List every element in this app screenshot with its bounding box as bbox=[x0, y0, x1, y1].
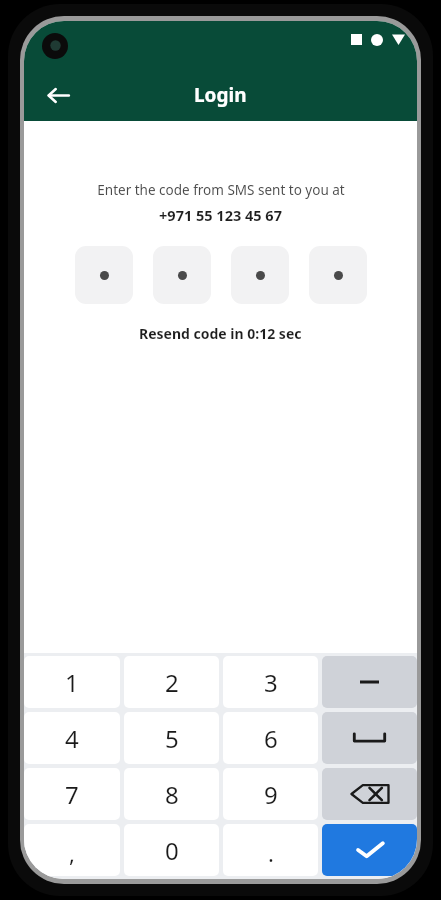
button[interactable]: 8 bbox=[124, 768, 219, 820]
staticText: 9 bbox=[264, 778, 278, 811]
button[interactable] bbox=[75, 246, 133, 304]
button[interactable]: 9 bbox=[223, 768, 318, 820]
staticText: 5 bbox=[165, 722, 179, 755]
button[interactable]: 1 bbox=[24, 656, 120, 708]
staticText: 6 bbox=[264, 722, 278, 755]
staticText: 3 bbox=[264, 666, 278, 699]
staticText: 0 bbox=[165, 834, 179, 867]
button[interactable]: Backspace bbox=[322, 768, 417, 820]
button[interactable]: Back bbox=[36, 73, 80, 117]
staticText: Resend code in 0:12 sec bbox=[139, 324, 302, 343]
staticText: Login bbox=[194, 82, 247, 108]
button[interactable]: 5 bbox=[124, 712, 219, 764]
staticText: 2 bbox=[165, 666, 179, 699]
staticText: +971 55 123 45 67 bbox=[159, 205, 282, 225]
button[interactable]: 3 bbox=[223, 656, 318, 708]
button[interactable]: Space bbox=[322, 712, 417, 764]
button[interactable]: 6 bbox=[223, 712, 318, 764]
staticText: 4 bbox=[65, 722, 79, 755]
button[interactable]: Resend code in 0:12 sec bbox=[139, 324, 302, 343]
staticText: Enter the code from SMS sent to you at bbox=[97, 181, 345, 199]
button[interactable]: Dash bbox=[322, 656, 417, 708]
staticText: 8 bbox=[165, 778, 179, 811]
button[interactable]: 2 bbox=[124, 656, 219, 708]
button[interactable]: Confirm bbox=[322, 824, 417, 876]
staticText: . bbox=[268, 838, 274, 868]
button[interactable]: 7 bbox=[24, 768, 120, 820]
staticText: 7 bbox=[65, 778, 79, 811]
button[interactable] bbox=[309, 246, 367, 304]
button[interactable] bbox=[231, 246, 289, 304]
button[interactable]: 0 bbox=[124, 824, 219, 876]
button[interactable]: . bbox=[223, 824, 318, 876]
staticText: 1 bbox=[65, 666, 79, 699]
staticText: , bbox=[69, 838, 75, 868]
button[interactable] bbox=[153, 246, 211, 304]
button[interactable]: , bbox=[24, 824, 120, 876]
button[interactable]: 4 bbox=[24, 712, 120, 764]
